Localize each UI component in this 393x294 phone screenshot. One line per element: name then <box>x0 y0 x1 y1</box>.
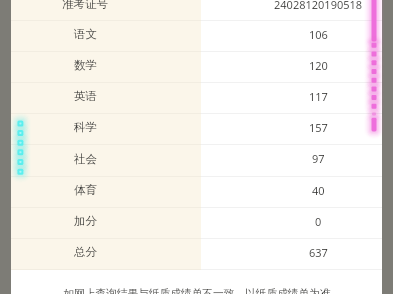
button[interactable]: 语文 <box>11 21 382 51</box>
button[interactable]: 准考证号 <box>11 0 382 20</box>
staticText: 如网上查询结果与纸质成绩单不一致，以纸质成绩单为准 <box>63 287 331 294</box>
other: Page position marker <box>0 0 36 294</box>
staticText: 97 <box>312 151 325 166</box>
staticText: 120 <box>309 58 328 73</box>
button[interactable]: 社会 <box>11 145 382 176</box>
button[interactable]: 总分 <box>11 239 382 269</box>
staticText: 106 <box>309 27 328 42</box>
staticText: 体育 <box>74 183 97 197</box>
staticText: 117 <box>309 89 328 104</box>
staticText: 637 <box>309 245 328 260</box>
staticText: 157 <box>309 120 328 135</box>
staticText: 科学 <box>74 120 97 134</box>
button[interactable]: 英语 <box>11 83 382 113</box>
button[interactable]: 体育 <box>11 177 382 207</box>
button[interactable]: 数学 <box>11 52 382 82</box>
staticText: 社会 <box>74 152 97 166</box>
staticText: 英语 <box>74 89 97 103</box>
staticText: 0 <box>315 214 322 229</box>
staticText: 40 <box>312 183 325 198</box>
staticText: 加分 <box>74 214 97 228</box>
staticText: 语文 <box>74 27 97 41</box>
button[interactable]: 科学 <box>11 114 382 144</box>
button[interactable]: 加分 <box>11 208 382 238</box>
staticText: 24028120190518 <box>274 0 363 12</box>
staticText: 准考证号 <box>62 0 108 11</box>
staticText: 数学 <box>74 58 97 72</box>
staticText: 总分 <box>74 245 97 259</box>
other: Scroll bar <box>363 0 393 294</box>
